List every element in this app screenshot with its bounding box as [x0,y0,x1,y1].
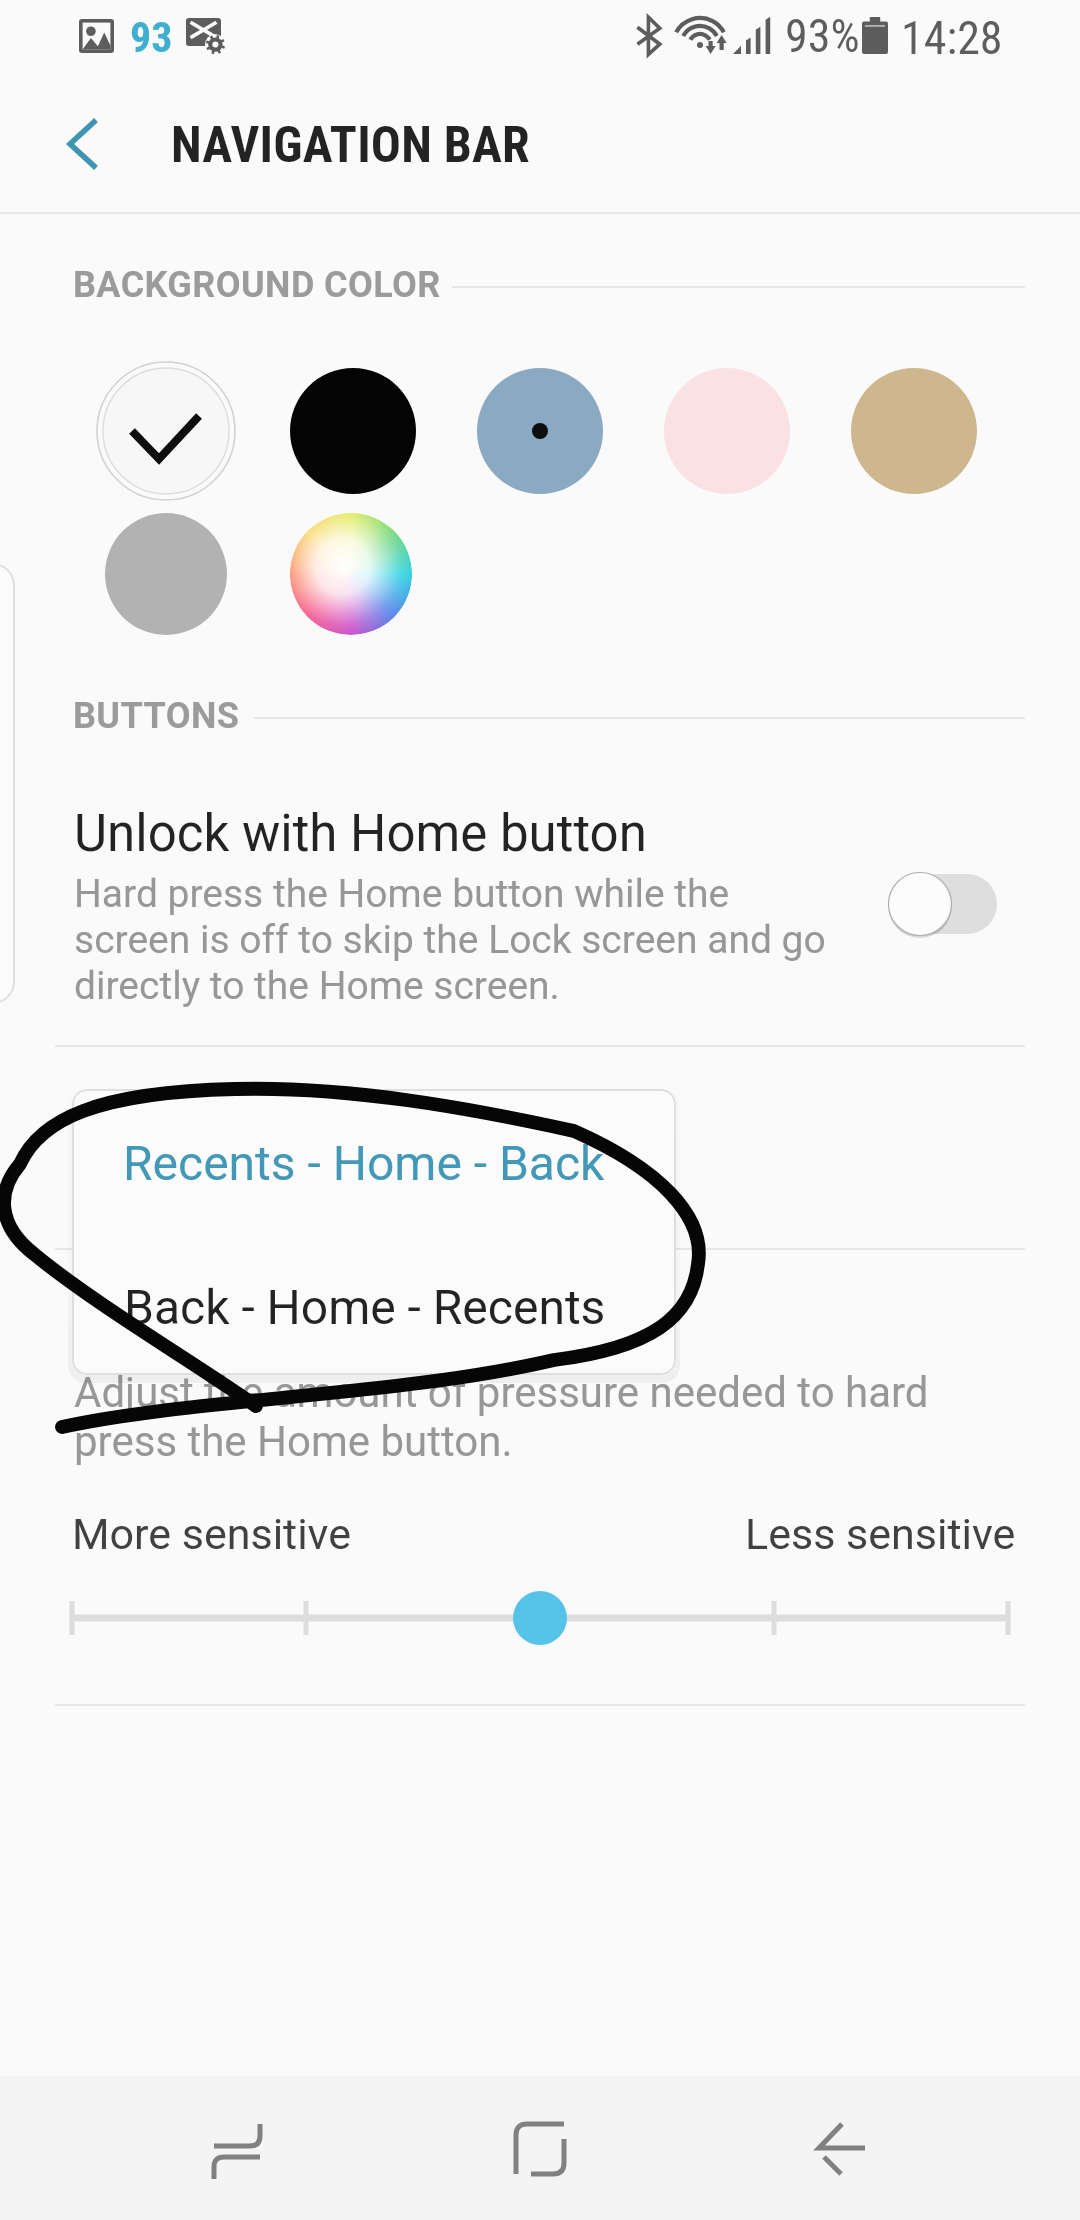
button[interactable]: Recents [168,2078,308,2218]
staticText: More sensitive [72,1509,351,1559]
button[interactable]: Back [773,2078,913,2218]
staticText: 93% [785,9,860,63]
staticText: BACKGROUND COLOR [73,264,441,306]
button[interactable]: Background colour option [851,368,977,494]
button[interactable]: Home [470,2078,610,2218]
staticText: BUTTONS [73,695,240,737]
staticText: Less sensitive [745,1509,1016,1559]
button[interactable]: Pressure sensitivity slider [40,1568,1040,1668]
button[interactable]: Background colour option [290,368,416,494]
staticText: Recents - Home - Back [123,1135,605,1191]
button[interactable]: Background colour option [477,368,603,494]
button[interactable]: Custom colour [290,513,412,635]
staticText: 14:28 [901,11,1003,65]
button[interactable]: Background colour option [105,513,227,635]
button[interactable] [72,1232,676,1375]
button[interactable]: Unlock with Home button [880,866,1008,944]
button[interactable]: Background colour option [103,368,229,494]
staticText: Adjust the amount of pressure needed to … [74,1368,929,1466]
button[interactable]: Navigate up [34,106,110,182]
button[interactable]: Background colour option [664,368,790,494]
staticText: 93 [130,13,173,62]
button[interactable] [72,1089,676,1232]
staticText: Hard press the Home button while the scr… [74,871,826,1009]
staticText: Back - Home - Recents [124,1279,606,1335]
staticText: Unlock with Home button [74,804,647,864]
staticText: NAVIGATION BAR [171,116,530,175]
